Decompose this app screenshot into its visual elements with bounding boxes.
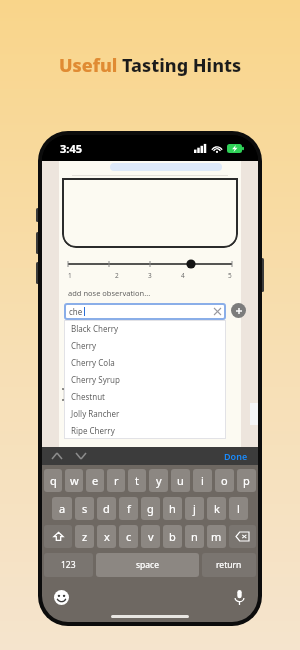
staticText: Ripe Cherry: [71, 425, 115, 436]
staticText: v: [148, 529, 154, 544]
staticText: n: [191, 529, 198, 544]
button[interactable]: Cherry Syrup: [64, 371, 226, 388]
staticText: 1: [68, 271, 72, 280]
staticText: return: [216, 559, 242, 571]
staticText: m: [211, 529, 222, 544]
staticText: Cherry Cola: [71, 357, 115, 368]
button[interactable]: Previous field: [52, 453, 62, 459]
button[interactable]: a: [52, 497, 72, 520]
button[interactable]: p: [237, 469, 256, 492]
staticText: o: [221, 473, 228, 488]
staticText: i: [201, 473, 204, 488]
staticText: Black Cherry: [71, 323, 119, 334]
button[interactable]: Next field: [76, 453, 86, 459]
button[interactable]: c: [119, 525, 138, 548]
staticText: 4: [181, 271, 185, 280]
button[interactable]: f: [119, 497, 138, 520]
staticText: Cherry Syrup: [71, 374, 120, 385]
button[interactable]: e: [86, 469, 104, 492]
staticText: s: [82, 501, 88, 516]
button[interactable]: h: [163, 497, 182, 520]
staticText: 2: [115, 271, 119, 280]
staticText: Tasting Hints: [122, 53, 242, 78]
button[interactable]: k: [207, 497, 226, 520]
staticText: Cherry: [71, 340, 97, 351]
button[interactable]: x: [97, 525, 116, 548]
button[interactable]: Shift: [44, 525, 72, 548]
staticText: Done: [224, 450, 248, 462]
button[interactable]: v: [141, 525, 160, 548]
button[interactable]: Chestnut: [64, 388, 226, 405]
button[interactable]: o: [215, 469, 234, 492]
staticText: d: [103, 501, 110, 516]
button[interactable]: Done: [224, 450, 248, 462]
staticText: 123: [61, 559, 76, 571]
button[interactable]: Jolly Rancher: [64, 405, 226, 422]
staticText: Useful: [59, 53, 122, 78]
button[interactable]: y: [149, 469, 168, 492]
button[interactable]: u: [171, 469, 190, 492]
button[interactable]: b: [163, 525, 182, 548]
button[interactable]: 123: [44, 553, 93, 577]
staticText: c: [126, 529, 132, 544]
staticText: p: [243, 473, 250, 488]
staticText: x: [104, 529, 110, 544]
button[interactable]: Backspace: [229, 525, 256, 548]
staticText: f: [127, 501, 131, 516]
staticText: Jolly Rancher: [71, 408, 120, 419]
button[interactable]: i: [193, 469, 212, 492]
button[interactable]: r: [107, 469, 125, 492]
staticText: 5: [228, 271, 232, 280]
button[interactable]: d: [97, 497, 116, 520]
button[interactable]: q: [44, 469, 62, 492]
button[interactable]: Black Cherry: [64, 320, 226, 337]
button[interactable]: s: [75, 497, 94, 520]
staticText: r: [114, 473, 119, 488]
staticText: w: [70, 473, 79, 488]
button[interactable]: Add: [231, 303, 246, 318]
button[interactable]: Emoji: [54, 590, 69, 605]
staticText: l: [237, 501, 240, 516]
staticText: q: [50, 473, 57, 488]
staticText: u: [177, 473, 184, 488]
staticText: y: [156, 473, 162, 488]
staticText: add nose observation...: [68, 288, 151, 298]
button[interactable]: z: [75, 525, 94, 548]
other: Clear: [214, 308, 221, 315]
staticText: g: [147, 501, 154, 516]
button[interactable]: n: [185, 525, 204, 548]
button[interactable]: t: [128, 469, 146, 492]
staticText: Chestnut: [71, 391, 106, 402]
staticText: h: [169, 501, 176, 516]
button[interactable]: che: [69, 303, 221, 320]
staticText: k: [214, 501, 220, 516]
button[interactable]: g: [141, 497, 160, 520]
staticText: b: [169, 529, 176, 544]
button[interactable]: w: [65, 469, 83, 492]
staticText: z: [82, 529, 88, 544]
button[interactable]: Cherry: [64, 337, 226, 354]
button[interactable]: Ripe Cherry: [64, 422, 226, 439]
button[interactable]: Dictation: [234, 590, 245, 605]
staticText: 3:45: [60, 141, 82, 156]
button[interactable]: [62, 178, 238, 248]
button[interactable]: return: [202, 553, 256, 577]
button[interactable]: Cherry Cola: [64, 354, 226, 371]
staticText: che: [69, 306, 83, 317]
staticText: t: [135, 473, 139, 488]
button[interactable]: m: [207, 525, 226, 548]
staticText: e: [92, 473, 99, 488]
button[interactable]: j: [185, 497, 204, 520]
staticText: a: [59, 501, 66, 516]
button[interactable]: space: [96, 553, 199, 577]
staticText: j: [193, 501, 196, 516]
staticText: 3: [148, 271, 152, 280]
button[interactable]: l: [229, 497, 248, 520]
staticText: space: [136, 559, 159, 571]
